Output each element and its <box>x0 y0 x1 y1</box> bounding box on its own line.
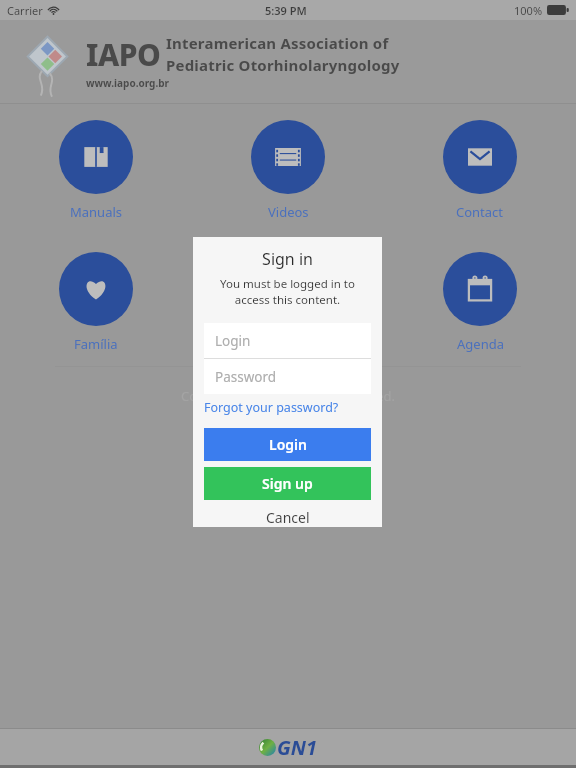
staticText: GN1 <box>277 734 317 761</box>
staticText: Login <box>215 332 251 350</box>
staticText: IAPO <box>86 34 161 75</box>
staticText: 100% <box>514 3 543 18</box>
staticText: Copyright 2019. All rights reserved. <box>0 387 576 405</box>
staticText: Cancel <box>266 508 310 527</box>
button[interactable]: Agenda <box>439 252 521 353</box>
staticText: Família <box>74 335 118 353</box>
staticText: Carrier <box>7 3 43 18</box>
button[interactable]: Manuals <box>55 120 137 221</box>
staticText: You must be logged in to access this con… <box>205 276 370 307</box>
button[interactable]: Cancel <box>193 507 382 527</box>
staticText: Forgot your password? <box>204 399 339 416</box>
staticText: Agenda <box>457 335 504 353</box>
button[interactable]: Sign up <box>204 467 371 500</box>
button[interactable]: Família <box>55 252 137 353</box>
button[interactable]: Password <box>204 359 371 394</box>
staticText: Manuals <box>70 203 123 221</box>
staticText: Contact <box>456 203 504 221</box>
staticText: Videos <box>268 203 309 221</box>
staticText: Sign in <box>193 248 382 270</box>
button[interactable]: Forgot your password? <box>204 399 382 416</box>
button[interactable]: Contact <box>439 120 521 221</box>
staticText: 5:39 PM <box>265 3 307 18</box>
button[interactable]: Congresses <box>247 252 329 353</box>
button[interactable]: Login <box>204 323 371 358</box>
staticText: Interamerican Association of <box>166 33 389 53</box>
button[interactable]: Videos <box>247 120 329 221</box>
staticText: Sign up <box>262 474 313 493</box>
staticText: www.iapo.org.br <box>86 76 169 90</box>
staticText: Password <box>215 368 277 386</box>
staticText: Pediatric Otorhinolaryngology <box>166 55 400 75</box>
button[interactable]: Login <box>204 428 371 461</box>
staticText: Login <box>269 435 307 454</box>
